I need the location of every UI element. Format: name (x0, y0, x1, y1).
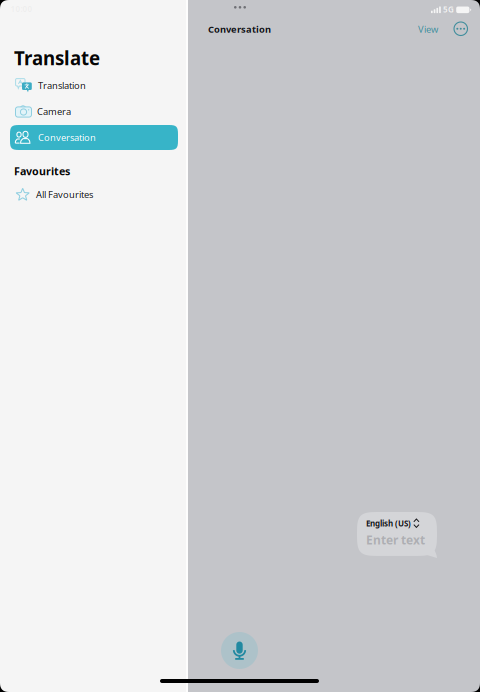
staticText: Conversation (208, 23, 271, 35)
button[interactable]: More options (451, 19, 470, 38)
button[interactable]: Conversation (10, 125, 178, 150)
staticText: Camera (37, 105, 71, 118)
staticText: View (418, 23, 438, 35)
staticText: English (US) (366, 518, 411, 529)
button[interactable]: Camera (10, 99, 178, 124)
staticText: Translation (38, 79, 86, 92)
staticText: Conversation (38, 131, 96, 144)
staticText: 5G (443, 4, 454, 15)
button[interactable]: Translation (10, 73, 178, 98)
staticText: Favourites (14, 164, 70, 178)
button[interactable]: Record (221, 632, 258, 669)
staticText: Translate (14, 45, 100, 70)
staticText: Enter text (366, 532, 425, 548)
button[interactable]: View (414, 19, 442, 39)
staticText: All Favourites (36, 188, 93, 201)
button[interactable]: All Favourites (10, 182, 178, 207)
